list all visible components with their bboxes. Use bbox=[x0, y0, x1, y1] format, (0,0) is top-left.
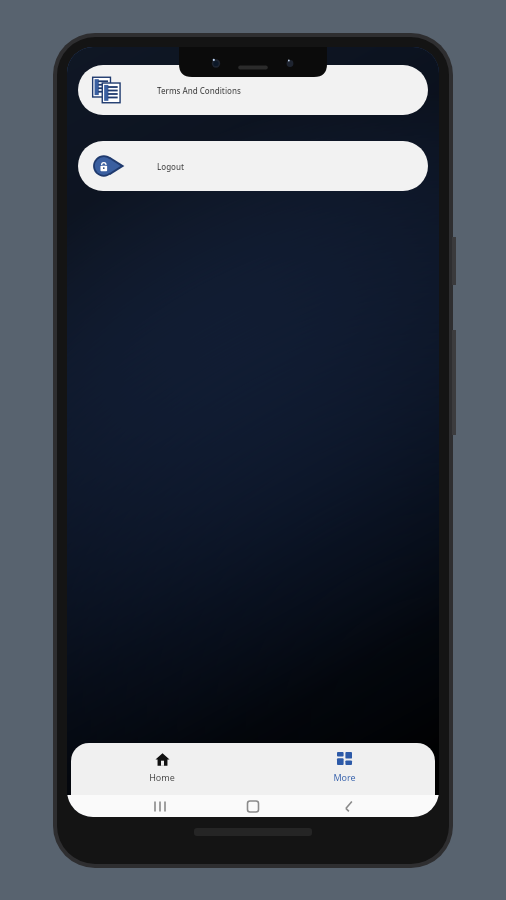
button[interactable]: More bbox=[253, 743, 435, 783]
staticText: Terms And Conditions bbox=[157, 85, 241, 96]
button[interactable]: Home bbox=[71, 743, 253, 783]
other: Home bbox=[155, 752, 170, 767]
button[interactable]: Terms And Conditions bbox=[78, 65, 428, 115]
staticText: More bbox=[333, 771, 356, 783]
other: More bbox=[337, 752, 352, 767]
staticText: Home bbox=[149, 771, 175, 783]
staticText: Logout bbox=[157, 161, 185, 172]
button[interactable]: Logout bbox=[78, 141, 428, 191]
